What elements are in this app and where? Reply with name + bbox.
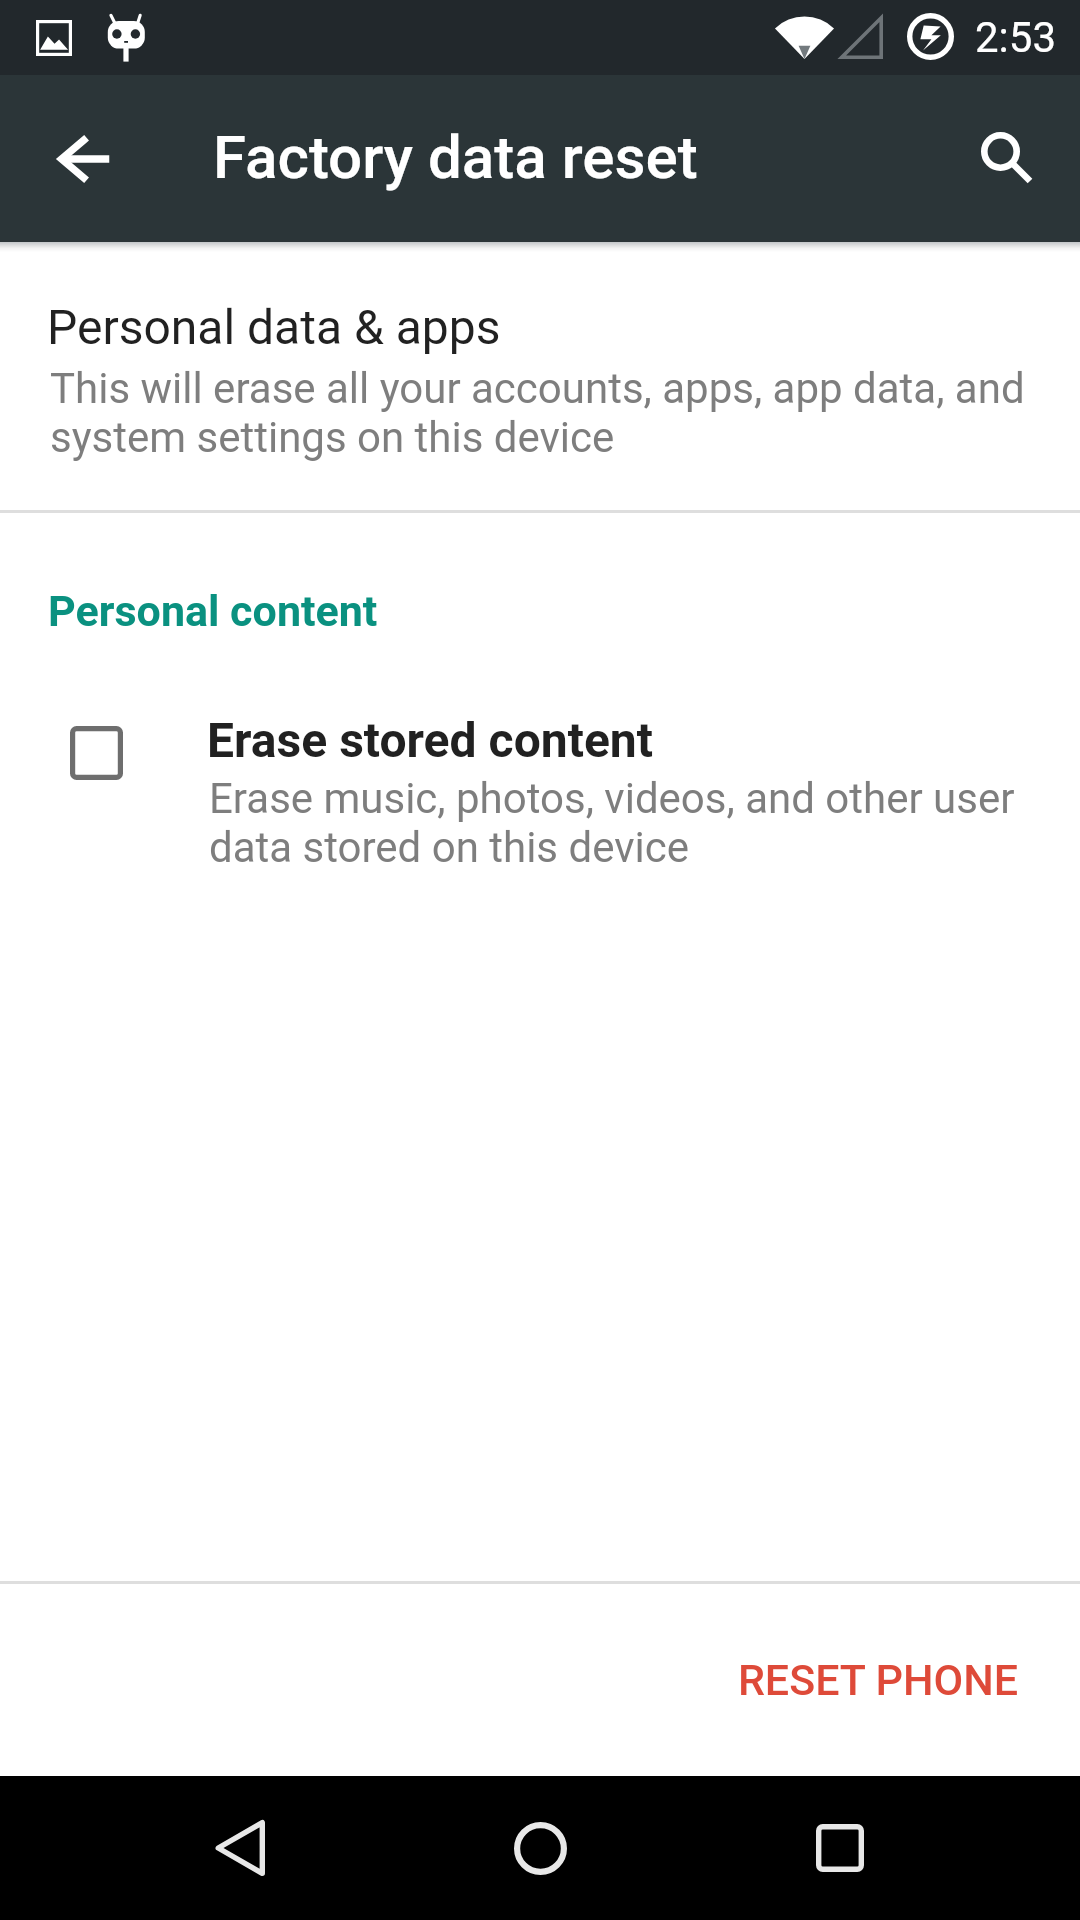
button[interactable]: Navigate up: [26, 103, 138, 215]
staticText: Erase stored content: [207, 712, 653, 768]
staticText: This will erase all your accounts, apps,…: [50, 364, 1045, 462]
staticText: 2:53: [956, 13, 1056, 62]
staticText: Personal content: [48, 586, 378, 636]
staticText: Personal data & apps: [47, 299, 501, 355]
staticText: Factory data reset: [213, 122, 698, 192]
button[interactable]: Home: [484, 1792, 596, 1904]
button[interactable]: Back: [188, 1792, 300, 1904]
button[interactable]: Recent apps: [784, 1792, 896, 1904]
staticText: Erase music, photos, videos, and other u…: [209, 774, 1024, 872]
staticText: RESET PHONE: [738, 1655, 1019, 1705]
button[interactable]: Search: [950, 103, 1062, 215]
button[interactable]: Erase stored content: [0, 690, 1080, 905]
button[interactable]: RESET PHONE: [716, 1630, 1040, 1730]
